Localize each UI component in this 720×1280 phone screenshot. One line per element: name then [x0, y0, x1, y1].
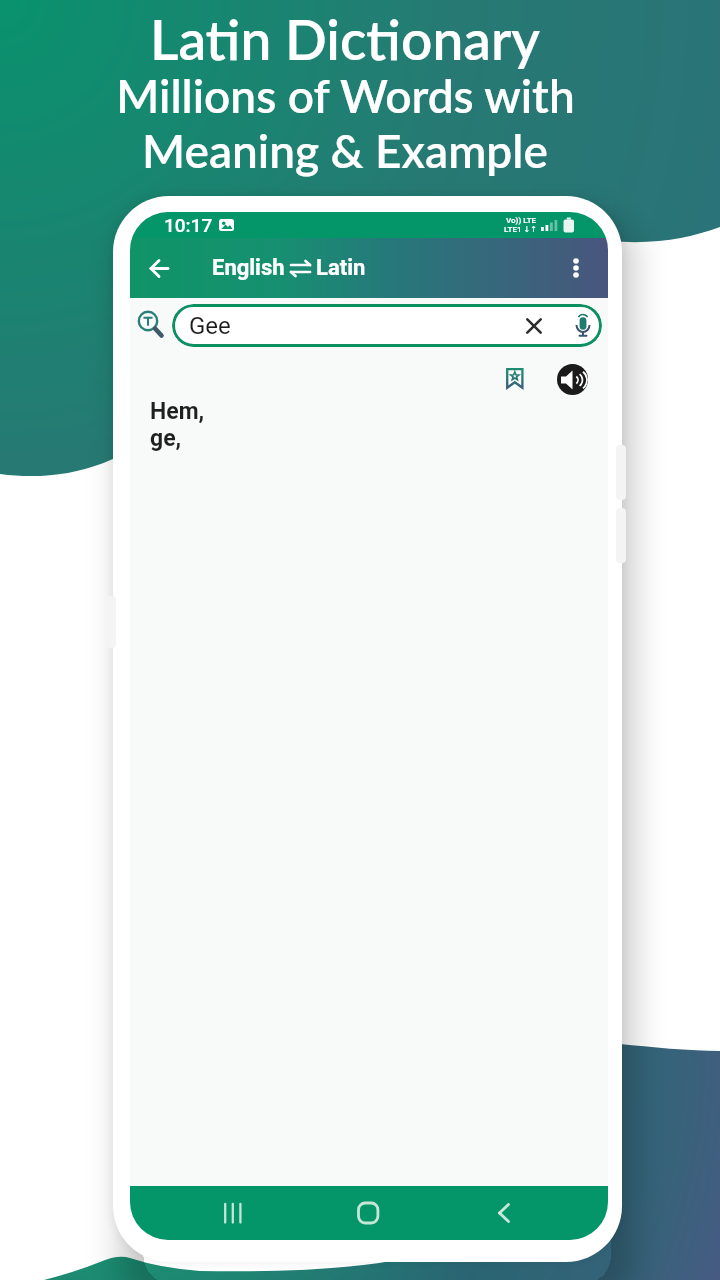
button[interactable] — [215, 1186, 251, 1240]
button[interactable] — [130, 238, 188, 298]
staticText: Latin Dictionary — [150, 6, 540, 72]
button[interactable] — [557, 364, 588, 395]
button[interactable] — [486, 1186, 522, 1240]
staticText: Vo)) LTE — [506, 216, 537, 225]
staticText: English — [212, 255, 285, 281]
staticText: Hem, — [150, 398, 205, 425]
staticText: Millions of Words with — [116, 68, 575, 123]
button[interactable]: Gee — [172, 304, 602, 347]
staticText: Gee — [189, 312, 231, 340]
button[interactable] — [498, 362, 532, 396]
button[interactable] — [553, 238, 599, 298]
button[interactable] — [350, 1186, 386, 1240]
staticText: Meaning & Example — [142, 123, 548, 178]
staticText: 10:17 — [164, 214, 213, 236]
staticText: ge, — [150, 425, 182, 452]
staticText: Latin — [316, 255, 366, 281]
button[interactable] — [575, 315, 591, 337]
button[interactable] — [134, 304, 170, 347]
staticText: LTE1 ↓↑ — [504, 225, 537, 234]
